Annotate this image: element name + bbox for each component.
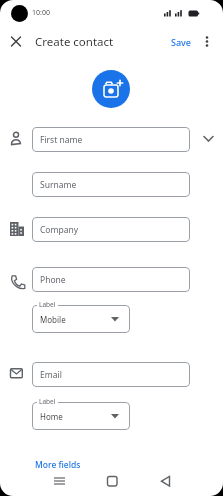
staticText: More fields [35,459,81,471]
button[interactable] [198,129,220,149]
staticText: Surname [40,179,77,191]
button[interactable] [92,70,130,108]
button[interactable]: Phone [32,267,190,292]
staticText: Label [39,300,56,309]
staticText: Home [40,411,63,422]
staticText: Save [171,36,192,48]
staticText: Email [40,369,62,381]
button[interactable]: Company [32,217,190,242]
button[interactable]: Surname [32,172,190,197]
button[interactable]: First name [32,127,190,152]
button[interactable] [92,472,132,490]
staticText: First name [40,134,83,146]
staticText: Phone [40,274,66,286]
button[interactable]: Save [165,31,197,52]
button[interactable]: Email [32,362,190,387]
staticText: 10:00 [32,8,50,18]
button[interactable] [6,31,27,52]
button[interactable]: More fields [35,458,97,472]
button[interactable] [199,31,215,52]
staticText: Label [39,397,56,406]
staticText: Company [40,224,79,236]
button[interactable] [145,472,185,490]
button[interactable] [40,472,80,490]
button[interactable]: Home [32,402,130,430]
staticText: Create contact [35,34,114,50]
button[interactable]: Mobile [32,305,130,333]
staticText: Mobile [40,314,66,325]
